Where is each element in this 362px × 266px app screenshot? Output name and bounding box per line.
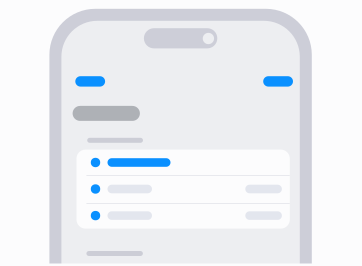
button[interactable]: List item 2 (0, 0, 362, 266)
button[interactable]: Edit (0, 0, 362, 266)
button[interactable]: List item 3 (0, 0, 362, 266)
button[interactable]: Back (0, 0, 362, 266)
button[interactable]: List item 1 (0, 0, 362, 266)
